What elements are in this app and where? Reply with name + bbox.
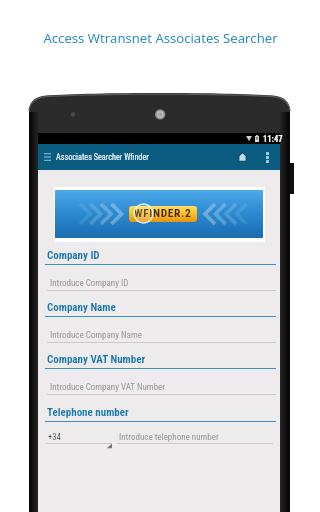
button[interactable]: Open navigation drawer [39, 149, 55, 165]
button[interactable]: Company ID [45, 251, 276, 297]
button[interactable]: Home [233, 148, 252, 166]
staticText: Telephone number [47, 406, 129, 419]
button[interactable]: Country calling code +34 [46, 431, 112, 452]
staticText: Company VAT Number [47, 353, 146, 366]
staticText: +34 [48, 432, 61, 442]
button[interactable]: Company Name [45, 303, 276, 349]
button[interactable]: Introduce telephone number [117, 431, 273, 452]
staticText: Company ID [47, 249, 100, 262]
staticText: Access Wtransnet Associates Searcher [43, 29, 278, 47]
button[interactable]: More options [259, 147, 275, 167]
staticText: Associates Searcher Wfinder [56, 152, 149, 162]
staticText: 11:47 [263, 134, 283, 144]
staticText: Introduce telephone number [119, 432, 219, 443]
staticText: WFINDER.2 [134, 206, 192, 219]
button[interactable]: Company VAT Number [45, 355, 276, 401]
staticText: Introduce Company Name [50, 330, 142, 341]
staticText: Introduce Company VAT Number [50, 382, 166, 393]
staticText: Introduce Company ID [50, 278, 129, 289]
staticText: Company Name [47, 301, 116, 314]
